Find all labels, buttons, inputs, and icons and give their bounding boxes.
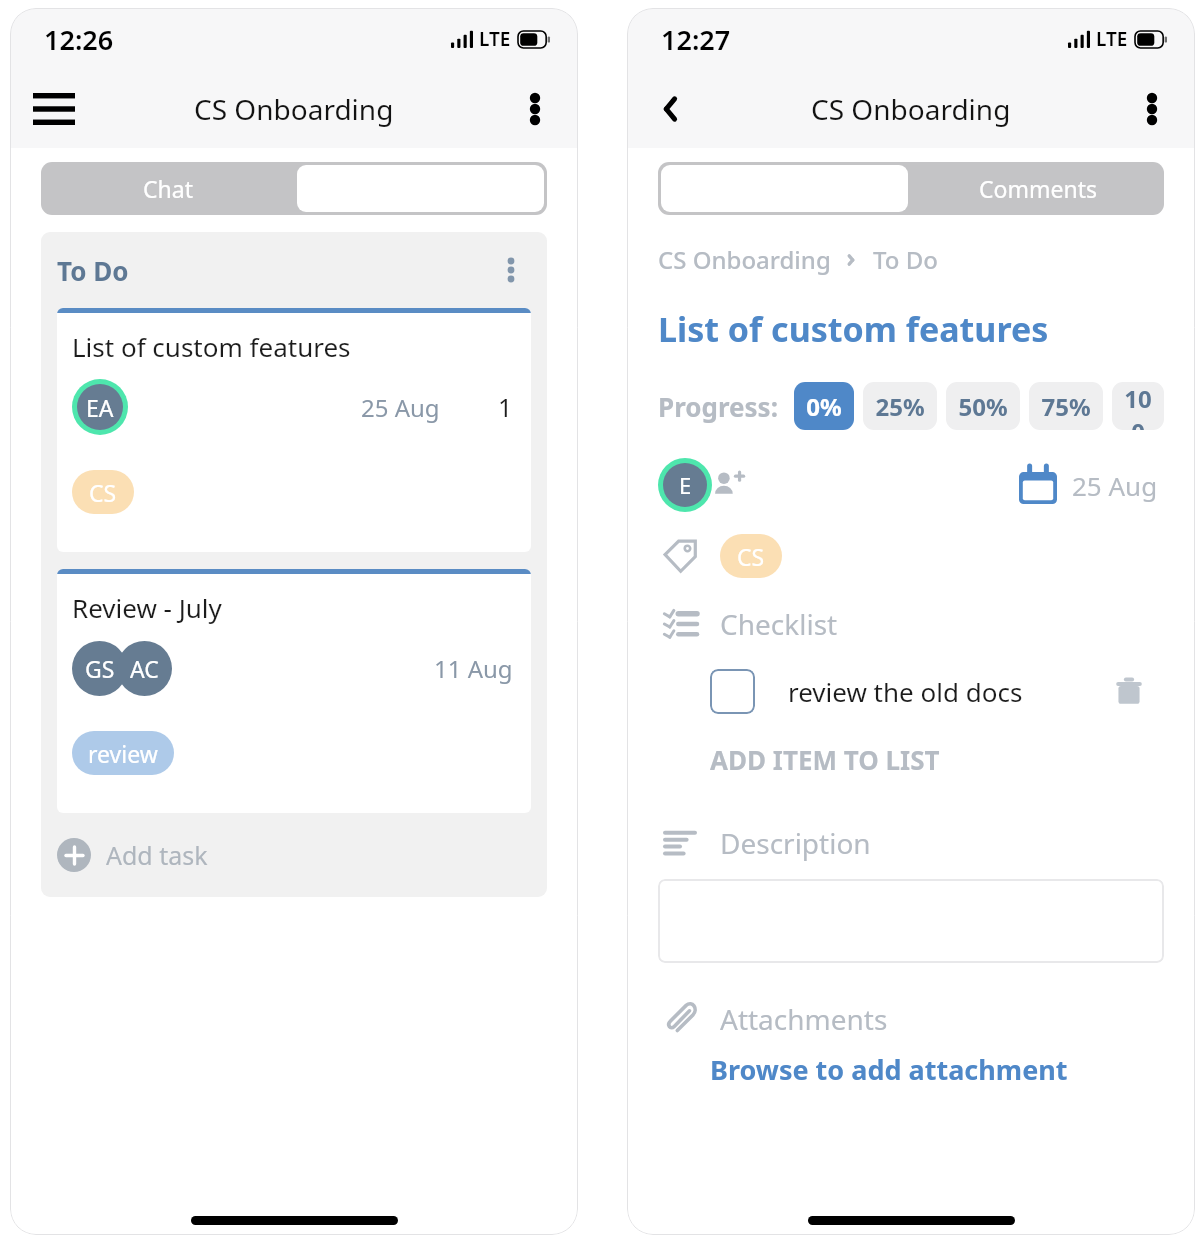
button[interactable]: More options xyxy=(1125,82,1179,136)
button[interactable]: Menu xyxy=(24,79,84,139)
staticText: 100% xyxy=(1124,382,1152,430)
button[interactable]: List options xyxy=(491,250,531,290)
button[interactable]: 100% xyxy=(1112,382,1164,430)
staticText: 75% xyxy=(1041,390,1091,423)
button[interactable]: 25% xyxy=(863,382,937,430)
staticText: 12:26 xyxy=(44,21,114,58)
staticText: CS Onboarding xyxy=(194,90,394,128)
button[interactable]: CS xyxy=(720,534,782,578)
staticText: Comments xyxy=(979,173,1097,204)
staticText: CS Onboarding xyxy=(811,90,1011,128)
button[interactable]: 50% xyxy=(946,382,1020,430)
staticText: Browse to add attachment xyxy=(710,1051,1068,1088)
button[interactable]: 75% xyxy=(1029,382,1103,430)
staticText: Checklist xyxy=(720,605,838,643)
staticText: CS xyxy=(89,477,117,508)
staticText: 11 Aug xyxy=(434,652,513,685)
button[interactable]: ADD ITEM TO LIST xyxy=(710,742,940,777)
button[interactable] xyxy=(658,879,1164,963)
staticText: List of custom features xyxy=(658,306,1049,352)
staticText: ADD ITEM TO LIST xyxy=(710,742,940,777)
staticText: 25% xyxy=(875,390,925,423)
staticText: Attachments xyxy=(720,1000,888,1038)
button[interactable]: CS Onboarding xyxy=(658,243,831,276)
button[interactable]: More options xyxy=(508,82,562,136)
button[interactable]: To Do xyxy=(873,243,938,276)
staticText: 25 Aug xyxy=(361,391,440,424)
button[interactable]: Comments xyxy=(911,162,1164,215)
staticText: CS xyxy=(737,541,765,572)
button[interactable] xyxy=(294,162,547,215)
staticText: 12:27 xyxy=(661,21,731,58)
button[interactable]: List of custom features xyxy=(57,308,531,552)
button[interactable]: Delete item xyxy=(1106,668,1152,714)
staticText: Progress: xyxy=(658,389,778,424)
staticText: E xyxy=(679,470,692,500)
button[interactable]: 0% xyxy=(794,382,854,430)
button[interactable]: Chat xyxy=(41,162,294,215)
staticText: Add task xyxy=(106,838,208,872)
button[interactable]: Back xyxy=(641,79,701,139)
staticText: 25 Aug xyxy=(1072,468,1158,503)
button[interactable] xyxy=(658,162,911,215)
staticText: Description xyxy=(720,824,871,862)
staticText: EA xyxy=(86,392,114,423)
staticText: 1 xyxy=(498,390,513,424)
staticText: GS xyxy=(85,653,115,684)
staticText: LTE xyxy=(1096,26,1128,52)
button[interactable]: Add member xyxy=(706,463,750,507)
staticText: review xyxy=(88,738,158,769)
staticText: LTE xyxy=(479,26,511,52)
staticText: 50% xyxy=(958,390,1008,423)
button[interactable]: Review - July xyxy=(57,569,531,813)
staticText: Review - July xyxy=(72,590,222,625)
staticText: 0% xyxy=(806,390,842,423)
button[interactable]: Add task xyxy=(57,813,547,897)
staticText: AC xyxy=(130,653,159,684)
staticText: To Do xyxy=(57,253,129,288)
staticText: Chat xyxy=(143,173,193,204)
staticText: List of custom features xyxy=(72,329,351,364)
button[interactable]: Due date xyxy=(1016,463,1060,507)
button[interactable]: Browse to add attachment xyxy=(710,1051,1068,1088)
button[interactable]: review the old docs xyxy=(710,668,1152,714)
staticText: review the old docs xyxy=(788,674,1023,709)
